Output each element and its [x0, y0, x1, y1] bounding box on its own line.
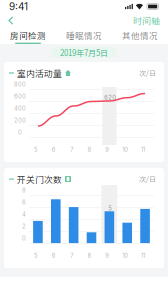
staticText: 5	[34, 146, 38, 153]
staticText: 时间轴	[133, 14, 160, 27]
staticText: 2	[22, 223, 26, 230]
staticText: 睡眠情况	[66, 29, 102, 41]
button[interactable]: 其他情况	[112, 28, 168, 44]
button[interactable]: 房间检测	[0, 28, 56, 44]
staticText: 800	[14, 81, 26, 88]
staticText: 6	[52, 252, 56, 259]
staticText: 房间检测	[10, 29, 46, 41]
staticText: 11	[141, 146, 145, 153]
staticText: 9:41	[9, 0, 28, 13]
button[interactable]: 睡眠情况	[56, 28, 112, 44]
staticText: 2019年7月5日	[60, 47, 108, 58]
staticText: 0	[18, 129, 22, 136]
staticText: 10	[122, 146, 128, 153]
staticText: 400	[14, 105, 26, 112]
staticText: 7	[70, 146, 73, 153]
staticText: 开关门次数	[17, 173, 62, 185]
staticText: 其他情况	[122, 29, 158, 41]
staticText: 次/日	[139, 174, 156, 184]
staticText: 4	[22, 211, 26, 218]
button[interactable]: 时间轴	[121, 12, 168, 29]
staticText: 次/日	[139, 68, 156, 78]
staticText: 6	[22, 199, 26, 206]
staticText: 600	[14, 93, 26, 100]
staticText: 200	[14, 117, 26, 124]
staticText: 0	[22, 235, 26, 242]
staticText: 5	[34, 252, 38, 259]
staticText: 8	[87, 252, 91, 259]
staticText: 10	[122, 252, 128, 259]
staticText: 7	[70, 252, 73, 259]
staticText: 8	[87, 146, 91, 153]
staticText: 9	[105, 252, 109, 259]
staticText: 5	[108, 205, 112, 212]
staticText: 9	[105, 146, 109, 153]
button[interactable]: 2019年7月5日	[51, 47, 117, 58]
button[interactable]: 返回	[0, 13, 26, 28]
staticText: 室内活动量	[17, 67, 62, 79]
staticText: 11	[141, 252, 145, 259]
staticText: 8	[22, 187, 26, 194]
staticText: 620	[104, 94, 116, 101]
staticText: 6	[52, 146, 56, 153]
